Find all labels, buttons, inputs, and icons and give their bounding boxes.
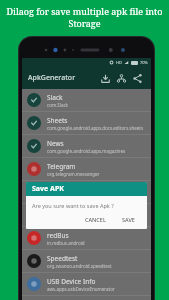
staticText: Slack bbox=[47, 93, 63, 102]
button[interactable]: Slack bbox=[22, 89, 151, 111]
staticText: Truecaller bbox=[47, 185, 78, 194]
staticText: com.Slack bbox=[47, 102, 69, 108]
button[interactable]: Sheets bbox=[22, 112, 151, 134]
staticText: Are you sure want to save Apk ? bbox=[32, 202, 114, 209]
staticText: com.google.android.apps.magazines bbox=[47, 148, 126, 154]
staticText: Speedtest bbox=[47, 254, 78, 263]
button[interactable]: Select all bbox=[113, 70, 129, 86]
button[interactable]: Share bbox=[129, 70, 145, 86]
staticText: CANCEL bbox=[85, 216, 106, 223]
staticText: SAVE bbox=[122, 216, 135, 223]
button[interactable]: USB Device Info bbox=[22, 273, 151, 295]
staticText: Save APK bbox=[32, 184, 64, 194]
staticText: USB Device Info bbox=[47, 277, 96, 286]
button[interactable]: SAVE bbox=[118, 214, 139, 225]
staticText: aws.apps.usbDeviceEnumerator bbox=[47, 286, 115, 292]
staticText: org.telegram.messenger bbox=[47, 171, 100, 177]
button[interactable]: News bbox=[22, 135, 151, 157]
staticText: News bbox=[47, 139, 64, 148]
button[interactable]: Speedtest bbox=[22, 250, 151, 272]
staticText: Sheets bbox=[47, 116, 68, 125]
staticText: ApkGenerator bbox=[28, 73, 76, 83]
staticText: org.zwanoo.android.speedtest bbox=[47, 263, 112, 269]
button[interactable]: Truecaller bbox=[22, 181, 151, 203]
staticText: in.redbus.android bbox=[47, 240, 85, 246]
button[interactable]: Uber bbox=[22, 204, 151, 226]
staticText: com.truecaller bbox=[47, 194, 78, 200]
staticText: HD bbox=[116, 60, 122, 65]
button[interactable]: CANCEL bbox=[81, 214, 110, 225]
button[interactable]: Telegram bbox=[22, 158, 151, 180]
staticText: Telegram bbox=[47, 162, 76, 171]
staticText: redBus bbox=[47, 231, 69, 240]
staticText: com.google.android.apps.docs.editors.she… bbox=[47, 125, 144, 131]
staticText: Dilaog for save multiple apk file into S… bbox=[0, 5, 169, 29]
button[interactable]: redBus bbox=[22, 227, 151, 249]
button[interactable]: Download bbox=[97, 70, 113, 86]
staticText: 70% bbox=[140, 60, 148, 65]
